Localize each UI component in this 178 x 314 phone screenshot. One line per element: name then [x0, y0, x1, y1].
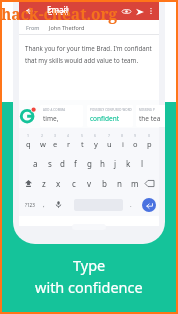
button[interactable]: ?123 [21, 193, 38, 216]
staticText: a [33, 158, 38, 169]
staticText: 6 [94, 133, 97, 138]
button[interactable]: m [128, 173, 141, 193]
button[interactable]: Voice input [52, 193, 64, 216]
staticText: q [26, 139, 31, 149]
staticText: Email [48, 6, 69, 17]
button[interactable]: Preview [120, 5, 133, 18]
button[interactable]: 2 [36, 128, 49, 153]
staticText: , [43, 201, 45, 209]
staticText: with confidence [35, 277, 143, 297]
staticText: e [53, 139, 58, 149]
button[interactable]: Delete [143, 173, 156, 193]
button[interactable]: . [125, 193, 137, 216]
staticText: z [42, 178, 46, 189]
button[interactable]: 4 [62, 128, 75, 153]
staticText: 9 [134, 133, 137, 138]
staticText: t [81, 139, 84, 149]
staticText: h [100, 158, 105, 169]
button[interactable]: f [69, 153, 82, 173]
button[interactable]: 9 [129, 128, 142, 153]
staticText: John Thetford [49, 24, 85, 31]
button[interactable]: g [83, 153, 96, 173]
button[interactable]: l [136, 153, 149, 173]
button[interactable]: b [98, 173, 111, 193]
staticText: c [72, 178, 76, 189]
button[interactable]: 0 [143, 128, 156, 153]
button[interactable]: c [67, 173, 80, 193]
button[interactable]: d [56, 153, 69, 173]
staticText: f [74, 158, 77, 169]
staticText: n [117, 178, 122, 189]
staticText: hack-cheat.org [1, 3, 118, 24]
staticText: j [114, 158, 117, 169]
button[interactable]: x [52, 173, 65, 193]
staticText: MISSING P [139, 108, 155, 112]
staticText: r [67, 139, 71, 149]
button[interactable]: s [43, 153, 56, 173]
button[interactable]: 7 [103, 128, 116, 153]
staticText: x [56, 178, 61, 189]
staticText: 5 [81, 133, 84, 138]
button[interactable]: 8 [116, 128, 129, 153]
staticText: b [102, 178, 107, 189]
button[interactable]: Shift [22, 173, 35, 193]
button[interactable]: , [38, 193, 50, 216]
staticText: s [48, 158, 52, 169]
button[interactable]: z [37, 173, 50, 193]
staticText: 8 [121, 133, 124, 138]
staticText: u [107, 139, 112, 149]
staticText: 4 [67, 133, 70, 138]
button[interactable]: j [109, 153, 122, 173]
button[interactable]: Send [133, 5, 146, 18]
button[interactable]: n [113, 173, 126, 193]
staticText: v [87, 178, 92, 189]
button[interactable]: 6 [89, 128, 102, 153]
staticText: 1 [27, 133, 30, 138]
staticText: that my skills would add value to team. [25, 56, 139, 64]
button[interactable]: Enter [142, 198, 156, 212]
staticText: g [87, 158, 92, 169]
button[interactable]: 3 [49, 128, 62, 153]
staticText: ?123 [25, 202, 35, 208]
staticText: 3 [54, 133, 57, 138]
button[interactable]: Grammarly [20, 106, 37, 123]
button[interactable]: POSSIBLY CONFUSED WORD [87, 105, 133, 127]
staticText: o [133, 139, 138, 149]
button[interactable]: a [29, 153, 42, 173]
button[interactable]: 5 [76, 128, 89, 153]
button[interactable]: Back [22, 4, 36, 18]
button[interactable]: MISSING P [136, 105, 165, 127]
staticText: ADD A COMMA [43, 108, 66, 112]
staticText: confident [90, 114, 120, 123]
staticText: i [122, 139, 124, 149]
button[interactable]: k [122, 153, 135, 173]
button[interactable]: v [83, 173, 96, 193]
button[interactable]: h [96, 153, 109, 173]
staticText: time, [43, 114, 59, 123]
staticText: d [60, 158, 65, 169]
staticText: y [94, 139, 98, 149]
staticText: Thank you for your time Brad. I'm confid… [25, 44, 152, 52]
staticText: w [40, 139, 46, 149]
staticText: 2 [41, 133, 44, 138]
staticText: Type [73, 255, 106, 275]
button[interactable]: More options [146, 6, 156, 16]
button[interactable]: 1 [22, 128, 35, 153]
staticText: Email [47, 4, 68, 15]
staticText: From [26, 24, 40, 31]
staticText: p [147, 139, 152, 149]
staticText: k [126, 158, 131, 169]
staticText: l [141, 158, 144, 169]
staticText: 0 [148, 133, 151, 138]
staticText: m [131, 178, 139, 189]
staticText: the tea [139, 114, 161, 123]
staticText: POSSIBLY CONFUSED WORD [90, 108, 132, 112]
staticText: 7 [108, 133, 111, 138]
staticText: . [130, 201, 132, 209]
button[interactable]: ADD A COMMA [40, 105, 83, 127]
